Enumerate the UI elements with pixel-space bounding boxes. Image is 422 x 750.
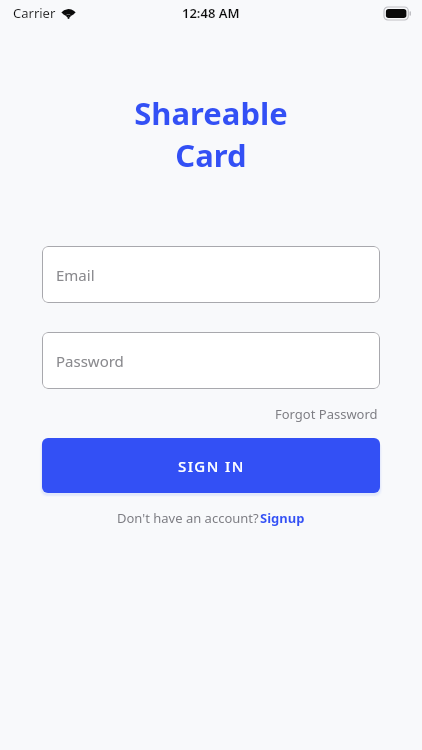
button[interactable]: Forgot Password	[273, 402, 380, 426]
staticText: Card	[175, 134, 247, 176]
staticText: Carrier	[13, 4, 56, 22]
button[interactable]: SIGN IN	[42, 438, 380, 493]
staticText: Shareable	[134, 92, 288, 134]
button[interactable]: Password	[42, 332, 380, 389]
staticText: 12:48 AM	[182, 4, 240, 22]
staticText: Password	[56, 351, 124, 371]
staticText: SIGN IN	[178, 456, 245, 476]
staticText: Forgot Password	[275, 405, 378, 423]
staticText: Signup	[260, 509, 305, 527]
button[interactable]: Signup	[259, 507, 306, 529]
staticText: Don't have an account?	[117, 509, 259, 527]
button[interactable]: Email	[42, 246, 380, 303]
staticText: Email	[56, 265, 95, 285]
